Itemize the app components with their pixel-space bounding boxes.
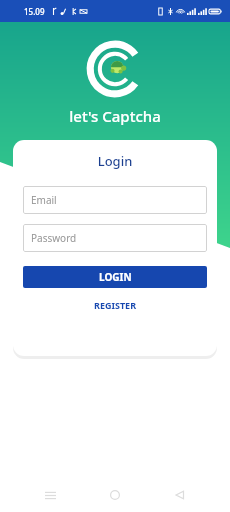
button[interactable]: Password — [23, 224, 207, 252]
button[interactable]: LOGIN — [23, 266, 207, 288]
button[interactable]: Recent apps — [35, 480, 65, 510]
staticText: let's Captcha — [0, 106, 230, 126]
staticText: Login — [23, 152, 207, 170]
button[interactable]: Back — [165, 480, 195, 510]
button[interactable]: Home — [100, 480, 130, 510]
staticText: REGISTER — [94, 299, 137, 311]
button[interactable]: Email — [23, 186, 207, 214]
button[interactable]: REGISTER — [23, 297, 207, 313]
staticText: LOGIN — [99, 270, 132, 284]
staticText: Password — [31, 231, 77, 245]
staticText: 15.09 — [24, 6, 45, 17]
staticText: Email — [31, 193, 57, 207]
